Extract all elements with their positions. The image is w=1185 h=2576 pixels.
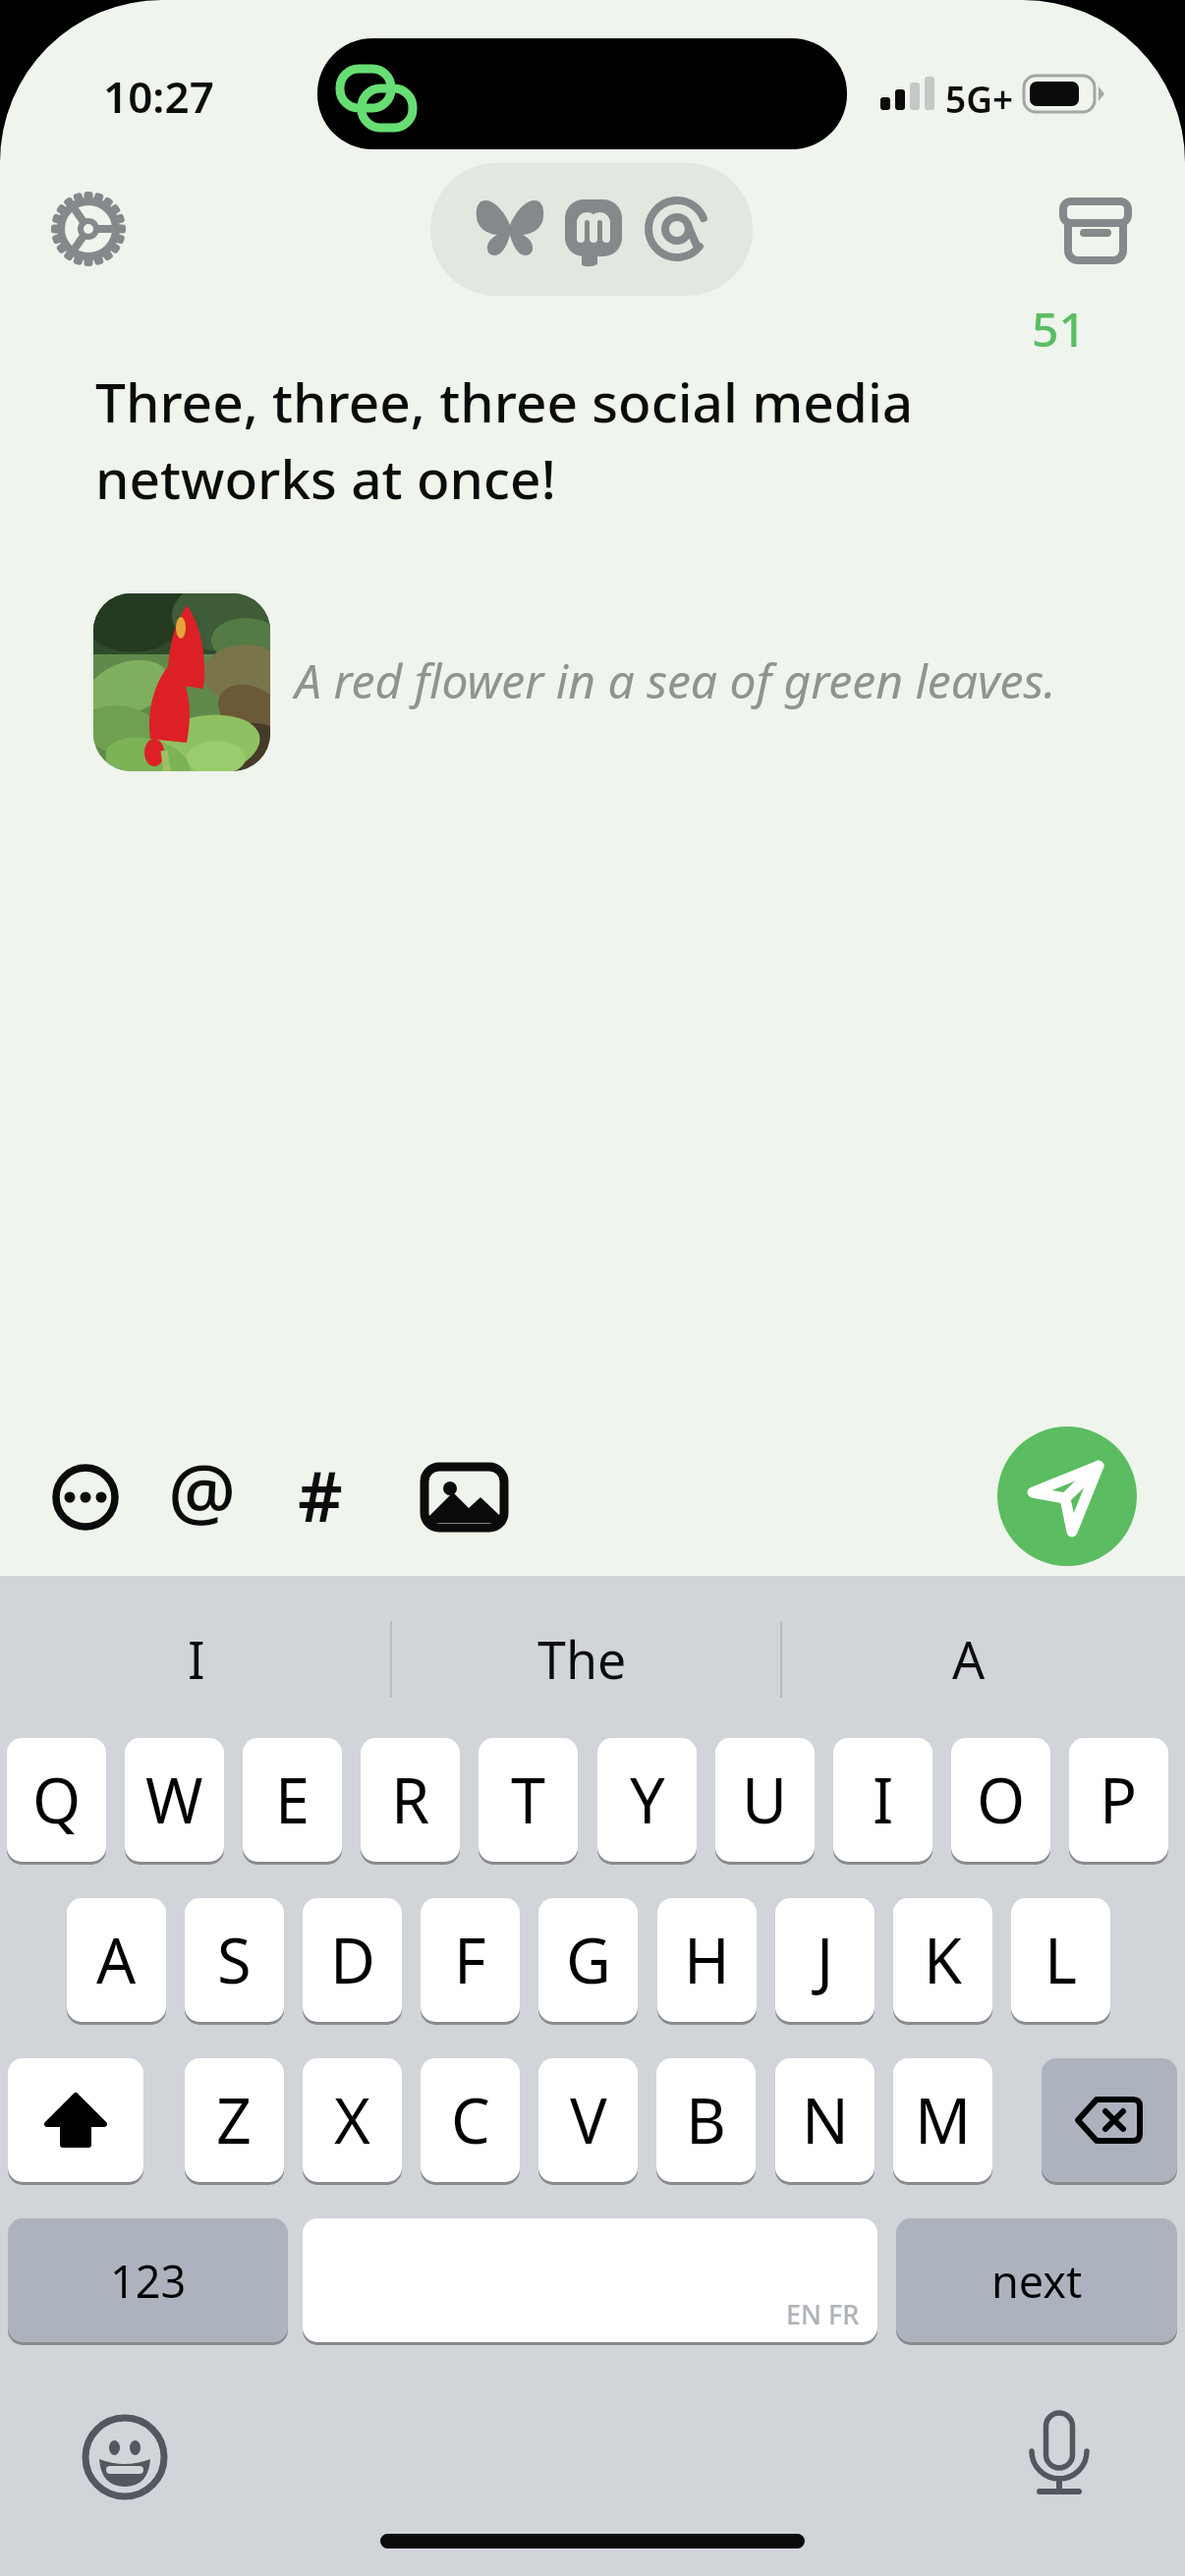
staticText: G [566, 1918, 611, 2002]
button[interactable]: P [1069, 1738, 1168, 1862]
button[interactable]: A [67, 1898, 166, 2022]
staticText: A [96, 1918, 137, 2002]
button[interactable] [85, 2418, 164, 2496]
button[interactable] [49, 1461, 122, 1534]
button[interactable]: Z [185, 2058, 284, 2182]
button[interactable]: F [421, 1898, 520, 2022]
staticText: O [977, 1758, 1026, 1842]
button[interactable]: Y [597, 1738, 697, 1862]
button[interactable]: E [243, 1738, 342, 1862]
button[interactable]: Q [7, 1738, 106, 1862]
button[interactable]: L [1011, 1898, 1110, 2022]
button[interactable]: J [775, 1898, 875, 2022]
button[interactable]: D [303, 1898, 402, 2022]
button[interactable]: V [538, 2058, 638, 2182]
button[interactable] [997, 1427, 1137, 1566]
staticText: next [991, 2251, 1083, 2311]
staticText: EN FR [786, 2296, 860, 2332]
staticText: R [391, 1758, 430, 1842]
button[interactable]: R [361, 1738, 460, 1862]
button[interactable]: I [833, 1738, 932, 1862]
button[interactable] [1022, 2413, 1097, 2497]
button[interactable] [93, 593, 270, 770]
staticText: U [742, 1758, 788, 1842]
staticText: I [873, 1758, 894, 1842]
button[interactable]: N [775, 2058, 875, 2182]
staticText: K [924, 1918, 962, 2002]
button[interactable]: I [20, 1609, 373, 1708]
staticText: J [817, 1918, 834, 2002]
button[interactable]: EN FR [303, 2218, 877, 2342]
staticText: H [684, 1918, 730, 2002]
staticText: C [451, 2078, 490, 2162]
staticText: # [298, 1447, 343, 1542]
button[interactable] [1055, 194, 1136, 274]
staticText: F [454, 1918, 486, 2002]
staticText: Z [216, 2078, 253, 2162]
staticText: A red flower in a sea of green leaves. [295, 648, 1056, 712]
button[interactable]: T [479, 1738, 578, 1862]
button[interactable]: M [893, 2058, 992, 2182]
staticText: @ [168, 1438, 237, 1541]
staticText: V [570, 2078, 607, 2162]
staticText: Q [32, 1758, 82, 1842]
button[interactable]: S [185, 1898, 284, 2022]
button[interactable]: next [896, 2218, 1177, 2342]
button[interactable]: U [715, 1738, 815, 1862]
button[interactable]: O [951, 1738, 1050, 1862]
button[interactable] [298, 1461, 370, 1534]
staticText: The [537, 1624, 627, 1694]
button[interactable]: W [125, 1738, 224, 1862]
staticText: M [915, 2078, 972, 2162]
button[interactable]: 123 [8, 2218, 288, 2342]
button[interactable] [430, 163, 753, 296]
staticText: S [217, 1918, 252, 2002]
staticText: 51 [1032, 297, 1086, 361]
button[interactable]: B [656, 2058, 756, 2182]
staticText: Y [630, 1758, 665, 1842]
staticText: N [802, 2078, 849, 2162]
staticText: I [188, 1624, 205, 1694]
staticText: E [275, 1758, 310, 1842]
button[interactable] [421, 1463, 507, 1532]
staticText: T [511, 1758, 546, 1842]
button[interactable] [1042, 2058, 1177, 2182]
button[interactable]: A [792, 1609, 1146, 1708]
staticText: B [686, 2078, 726, 2162]
button[interactable] [47, 188, 130, 270]
staticText: P [1100, 1758, 1138, 1842]
staticText: Three, three, three social media network… [95, 364, 914, 515]
button[interactable]: K [893, 1898, 992, 2022]
staticText: 123 [110, 2251, 187, 2311]
button[interactable]: H [657, 1898, 757, 2022]
staticText: X [334, 2078, 370, 2162]
button[interactable]: G [538, 1898, 638, 2022]
staticText: W [145, 1758, 203, 1842]
staticText: D [330, 1918, 375, 2002]
button[interactable]: C [421, 2058, 520, 2182]
button[interactable]: The [405, 1609, 759, 1708]
button[interactable]: X [303, 2058, 402, 2182]
staticText: 5G+ [945, 74, 1014, 123]
button[interactable] [8, 2058, 143, 2182]
staticText: L [1044, 1918, 1078, 2002]
staticText: 10:27 [103, 67, 214, 126]
button[interactable] [169, 1458, 250, 1539]
staticText: A [952, 1624, 986, 1694]
